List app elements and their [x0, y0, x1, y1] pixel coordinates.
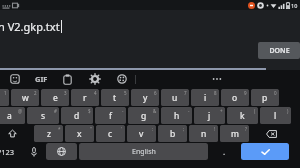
staticText: p	[262, 92, 268, 104]
staticText: n V2.gkp.txt	[0, 19, 60, 34]
staticText: v	[139, 128, 144, 140]
button[interactable]: h	[161, 107, 192, 124]
staticText: y	[143, 92, 148, 104]
staticText: c	[108, 128, 113, 140]
button[interactable]: Voice input	[23, 143, 44, 160]
staticText: l	[274, 110, 277, 122]
button[interactable]: g	[128, 107, 159, 124]
staticText: e	[53, 92, 58, 104]
button[interactable]: m	[220, 125, 249, 142]
button[interactable]: k	[227, 107, 258, 124]
staticText: u	[172, 92, 178, 104]
staticText: 2	[34, 90, 37, 96]
button[interactable]: z	[34, 125, 63, 142]
button[interactable]: j	[194, 107, 225, 124]
staticText: j	[208, 110, 211, 122]
button[interactable]: Settings	[81, 70, 108, 88]
button[interactable]: Stickers	[2, 70, 28, 88]
staticText: '	[121, 126, 123, 132]
staticText: o	[232, 92, 238, 104]
button[interactable]: e	[41, 89, 69, 106]
staticText: ;	[183, 126, 185, 132]
staticText: k	[240, 110, 245, 122]
button[interactable]: c	[96, 125, 125, 142]
staticText: English	[132, 147, 156, 157]
staticText: 6	[154, 90, 157, 96]
button[interactable]: u	[161, 89, 189, 106]
staticText: ?	[245, 126, 247, 132]
staticText: n	[201, 128, 207, 140]
staticText: @	[18, 108, 23, 114]
button[interactable]: y	[131, 89, 159, 106]
button[interactable]: x	[65, 125, 94, 142]
staticText: 4	[94, 90, 97, 96]
staticText: +	[220, 108, 223, 114]
staticText: b	[170, 128, 176, 140]
button[interactable]: s	[27, 107, 59, 124]
staticText: 5	[124, 90, 127, 96]
button[interactable]: Change keyboard language	[46, 143, 77, 160]
staticText: GIF	[35, 74, 48, 84]
button[interactable]: v	[127, 125, 156, 142]
staticText: w	[22, 92, 29, 104]
staticText: r	[83, 92, 87, 104]
staticText: f	[109, 110, 112, 122]
button[interactable]: b	[158, 125, 187, 142]
staticText: -	[122, 108, 124, 114]
staticText: #	[54, 108, 57, 114]
button[interactable]: q	[0, 89, 9, 106]
staticText: d	[74, 110, 80, 122]
button[interactable]: Enter	[241, 143, 289, 160]
button[interactable]: i	[191, 89, 219, 106]
button[interactable]: Shift	[0, 125, 32, 142]
staticText: g	[141, 110, 147, 122]
staticText: 3	[64, 90, 67, 96]
staticText: DONE	[269, 46, 290, 56]
staticText: x	[77, 128, 82, 140]
staticText: &	[153, 108, 157, 114]
staticText: i	[204, 92, 207, 104]
staticText: :	[152, 126, 154, 132]
staticText: m	[231, 128, 239, 140]
staticText: ?123	[0, 147, 15, 157]
button[interactable]: r	[71, 89, 99, 106]
button[interactable]: l	[260, 107, 291, 124]
staticText: t	[113, 92, 117, 104]
button[interactable]: f	[95, 107, 126, 124]
staticText: .	[223, 146, 226, 157]
staticText: 8	[214, 90, 217, 96]
staticText: "	[90, 126, 92, 132]
button[interactable]: o	[221, 89, 249, 106]
button[interactable]: GIF	[28, 70, 54, 88]
staticText: 10	[291, 2, 298, 9]
button[interactable]: w	[11, 89, 39, 106]
button[interactable]: p	[251, 89, 279, 106]
button[interactable]: DONE	[258, 42, 300, 59]
button[interactable]: t	[101, 89, 129, 106]
button[interactable]: Clipboard	[54, 70, 81, 88]
staticText: 0	[274, 90, 277, 96]
staticText: )	[287, 108, 289, 114]
button[interactable]: More options	[136, 70, 298, 88]
button[interactable]: a	[0, 107, 25, 124]
button[interactable]: English	[79, 143, 208, 160]
staticText: z	[47, 128, 51, 140]
staticText: a	[7, 110, 12, 122]
button[interactable]: d	[61, 107, 93, 124]
staticText: h	[174, 110, 180, 122]
button[interactable]: Theme	[108, 70, 135, 88]
staticText: -	[188, 108, 190, 114]
staticText: (	[254, 108, 256, 114]
button[interactable]: ?123	[0, 143, 21, 160]
staticText: 9	[244, 90, 247, 96]
button[interactable]: .	[210, 143, 239, 160]
button[interactable]: Backspace	[251, 125, 291, 142]
staticText: $	[88, 108, 91, 114]
staticText: 7	[184, 90, 187, 96]
staticText: *	[58, 126, 61, 132]
button[interactable]: n	[189, 125, 218, 142]
staticText: 1	[4, 90, 7, 96]
staticText: s	[41, 110, 46, 122]
staticText: !	[214, 126, 216, 132]
